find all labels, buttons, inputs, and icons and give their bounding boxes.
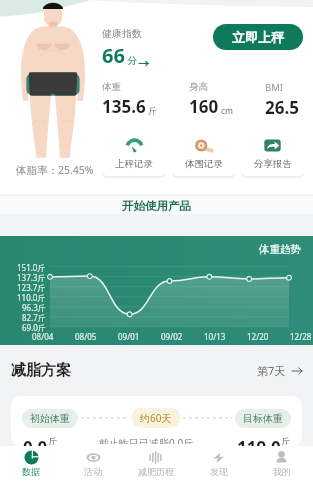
staticText: 12/20: [247, 331, 269, 342]
staticText: 08/04: [32, 331, 54, 342]
button[interactable]: 立即上秤: [213, 24, 303, 50]
button[interactable]: 健康指数: [102, 27, 148, 69]
staticText: 123.7斤: [17, 282, 46, 293]
staticText: 110.0斤: [17, 292, 46, 303]
staticText: 第7天: [257, 363, 286, 378]
staticText: 约60天: [140, 411, 172, 425]
staticText: 斤: [281, 436, 290, 445]
staticText: 体重: [102, 81, 121, 93]
button[interactable]: 活动: [62, 446, 124, 481]
staticText: 体围记录: [185, 158, 223, 170]
staticText: 斤: [48, 436, 57, 445]
staticText: 119.0: [237, 436, 281, 446]
button[interactable]: 发现: [187, 446, 250, 481]
staticText: 96.3斤: [22, 302, 46, 313]
staticText: 活动: [84, 466, 102, 477]
staticText: 69.0斤: [22, 322, 46, 333]
staticText: cm: [221, 105, 234, 117]
staticText: 立即上秤: [232, 29, 284, 45]
button[interactable]: 分享报告: [241, 130, 304, 176]
staticText: 分享报告: [254, 158, 292, 170]
staticText: 09/01: [118, 331, 140, 342]
staticText: 0.0: [23, 436, 48, 446]
staticText: 减肥历程: [138, 466, 174, 477]
staticText: 10/13: [204, 331, 226, 342]
staticText: 08/05: [75, 331, 97, 342]
staticText: 66: [102, 42, 125, 69]
staticText: 26.5: [265, 96, 299, 119]
staticText: 数据: [22, 466, 40, 477]
staticText: 身高: [189, 81, 208, 93]
button[interactable]: 开始使用产品: [0, 195, 313, 216]
staticText: 健康指数: [102, 27, 142, 40]
staticText: 斤: [148, 106, 157, 117]
button[interactable]: 第7天: [257, 363, 302, 378]
staticText: 初始体重: [30, 412, 70, 425]
staticText: 151.0斤: [17, 262, 46, 273]
staticText: 开始使用产品: [122, 199, 191, 213]
button[interactable]: 上秤记录: [102, 130, 166, 176]
staticText: 体脂率：25.45%: [16, 163, 94, 177]
staticText: 分: [127, 54, 137, 67]
staticText: 发现: [210, 466, 228, 477]
staticText: 我的: [273, 466, 291, 477]
staticText: 137.3斤: [17, 272, 46, 283]
button[interactable]: 减肥历程: [124, 446, 187, 481]
button[interactable]: 我的: [250, 446, 313, 481]
staticText: 82.7斤: [22, 312, 46, 323]
staticText: 160: [189, 95, 219, 118]
staticText: 体重趋势: [259, 243, 301, 256]
staticText: 截止昨日已减脂0.0斤: [99, 436, 194, 444]
staticText: 135.6: [102, 95, 146, 118]
staticText: 减脂方案: [11, 361, 71, 380]
staticText: 目标体重: [243, 412, 283, 425]
staticText: 09/02: [161, 331, 183, 342]
staticText: BMI: [265, 81, 284, 94]
staticText: 上秤记录: [115, 158, 153, 170]
button[interactable]: 数据: [0, 446, 62, 481]
staticText: 12/28: [290, 331, 312, 342]
button[interactable]: 体围记录: [172, 130, 235, 176]
